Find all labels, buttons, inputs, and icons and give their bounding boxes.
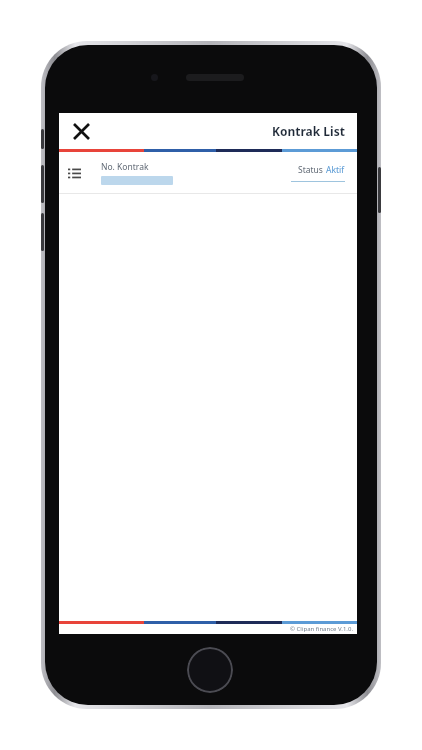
button[interactable]: Close: [67, 117, 95, 145]
button[interactable]: No. Kontrak: [59, 152, 357, 194]
staticText: Kontrak List: [272, 123, 345, 139]
staticText: No. Kontrak: [101, 161, 149, 173]
staticText: © Clipan finance V.1.0.: [290, 625, 353, 633]
staticText: Aktif: [326, 164, 345, 176]
staticText: Status: [298, 164, 326, 176]
